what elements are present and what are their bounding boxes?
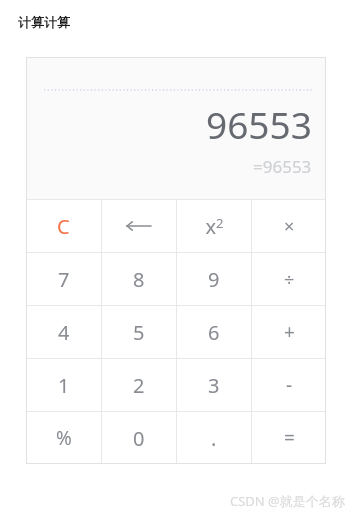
button[interactable]: 3 xyxy=(177,359,251,411)
other: Backspace xyxy=(122,209,156,243)
staticText: 5 xyxy=(133,319,145,346)
button[interactable]: 8 xyxy=(102,253,176,305)
button[interactable]: 7 xyxy=(26,253,101,305)
button[interactable]: % xyxy=(26,412,101,464)
button[interactable]: 0 xyxy=(102,412,176,464)
button[interactable]: = xyxy=(252,412,326,464)
staticText: 计算计算 xyxy=(18,14,70,30)
staticText: × xyxy=(284,214,295,239)
button[interactable]: C xyxy=(26,200,101,252)
staticText: 9 xyxy=(208,266,220,293)
button[interactable]: - xyxy=(252,359,326,411)
staticText: = xyxy=(284,425,295,451)
button[interactable]: 5 xyxy=(102,306,176,358)
button[interactable]: 4 xyxy=(26,306,101,358)
staticText: C xyxy=(57,213,70,240)
staticText: % xyxy=(56,425,72,451)
button[interactable]: 9 xyxy=(177,253,251,305)
staticText: ÷ xyxy=(284,267,295,292)
staticText: . xyxy=(211,425,217,452)
button[interactable]: 1 xyxy=(26,359,101,411)
staticText: - xyxy=(286,372,293,398)
staticText: =96553 xyxy=(253,155,312,178)
staticText: 3 xyxy=(208,372,220,399)
button[interactable]: + xyxy=(252,306,326,358)
button[interactable]: × xyxy=(252,200,326,252)
staticText: CSDN @就是个名称 xyxy=(230,492,345,510)
button[interactable]: x2 xyxy=(177,200,251,252)
staticText: 2 xyxy=(133,372,145,399)
button[interactable]: Backspace xyxy=(102,200,176,252)
button[interactable]: 2 xyxy=(102,359,176,411)
staticText: x2 xyxy=(205,213,224,240)
staticText: 4 xyxy=(58,319,70,346)
staticText: 0 xyxy=(133,425,145,452)
staticText: 8 xyxy=(133,266,145,293)
button[interactable]: 6 xyxy=(177,306,251,358)
staticText: 96553 xyxy=(206,99,312,149)
staticText: 6 xyxy=(208,319,220,346)
button[interactable]: . xyxy=(177,412,251,464)
staticText: 1 xyxy=(58,372,70,399)
staticText: 7 xyxy=(58,266,70,293)
staticText: + xyxy=(284,319,295,345)
button[interactable]: ÷ xyxy=(252,253,326,305)
